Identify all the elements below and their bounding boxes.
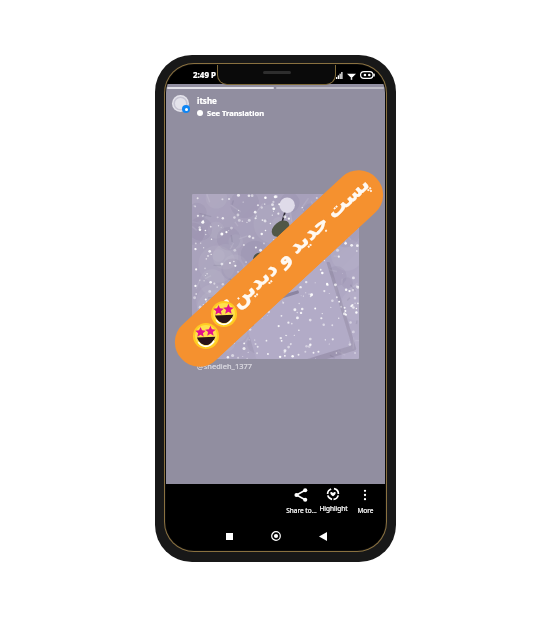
staticText: Share to... xyxy=(286,506,317,513)
staticText: See Translation xyxy=(207,108,265,118)
button[interactable]: Back xyxy=(311,524,335,548)
staticText: 2:49 P xyxy=(193,69,217,80)
staticText: @shedieh_1377 xyxy=(197,361,253,371)
button[interactable]: Share to... xyxy=(285,484,317,515)
staticText: Highlight xyxy=(319,504,348,513)
button[interactable]: Highlight xyxy=(317,484,349,515)
button[interactable]: More xyxy=(349,484,381,515)
staticText: itshe xyxy=(197,95,217,106)
staticText: More xyxy=(357,506,374,513)
staticText: پست جدید و دیدین؟ xyxy=(214,169,375,322)
button[interactable]: Recents xyxy=(217,524,241,548)
button[interactable]: Home xyxy=(264,524,288,548)
